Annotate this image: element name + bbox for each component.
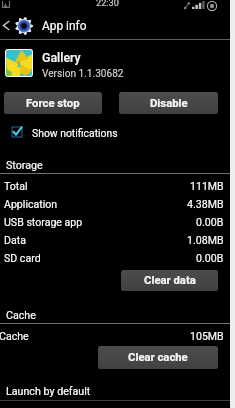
staticText: Application [4, 198, 58, 210]
button[interactable]: Application [0, 195, 235, 213]
staticText: Show notifications [32, 127, 118, 139]
staticText: 0.00B [196, 216, 224, 228]
staticText: 4.38MB [187, 198, 224, 210]
staticText: Gallery [42, 50, 81, 65]
staticText: 22:30 [96, 0, 119, 8]
staticText: Force stop [26, 97, 80, 110]
button[interactable] [0, 122, 235, 142]
button[interactable]: USB storage app [0, 213, 235, 231]
staticText: Cache [0, 330, 29, 342]
staticText: USB storage app [4, 216, 83, 228]
staticText: App info [42, 19, 87, 33]
staticText: Clear data [144, 274, 196, 287]
button[interactable]: Force stop [4, 92, 102, 114]
button[interactable]: SD card [0, 249, 235, 267]
staticText: 111MB [190, 180, 224, 192]
staticText: Storage [6, 159, 43, 172]
button[interactable]: Clear data [121, 270, 218, 291]
staticText: Disable [150, 97, 188, 110]
staticText: SD card [4, 252, 41, 264]
staticText: Cache [6, 309, 36, 322]
button[interactable]: Clear cache [98, 346, 218, 369]
button[interactable]: Data [0, 231, 235, 249]
staticText: Clear cache [128, 351, 188, 364]
button[interactable]: Disable [119, 92, 218, 114]
button[interactable]: Navigate up [0, 12, 12, 39]
staticText: Data [4, 234, 26, 246]
staticText: Total [4, 180, 28, 192]
staticText: Version 1.1.30682 [42, 68, 124, 80]
staticText: Launch by default [6, 385, 91, 398]
button[interactable]: Cache [0, 327, 235, 345]
button[interactable]: Total [0, 177, 235, 195]
staticText: 1.08MB [187, 234, 224, 246]
staticText: 0.00B [196, 252, 224, 264]
staticText: 105MB [190, 330, 224, 342]
